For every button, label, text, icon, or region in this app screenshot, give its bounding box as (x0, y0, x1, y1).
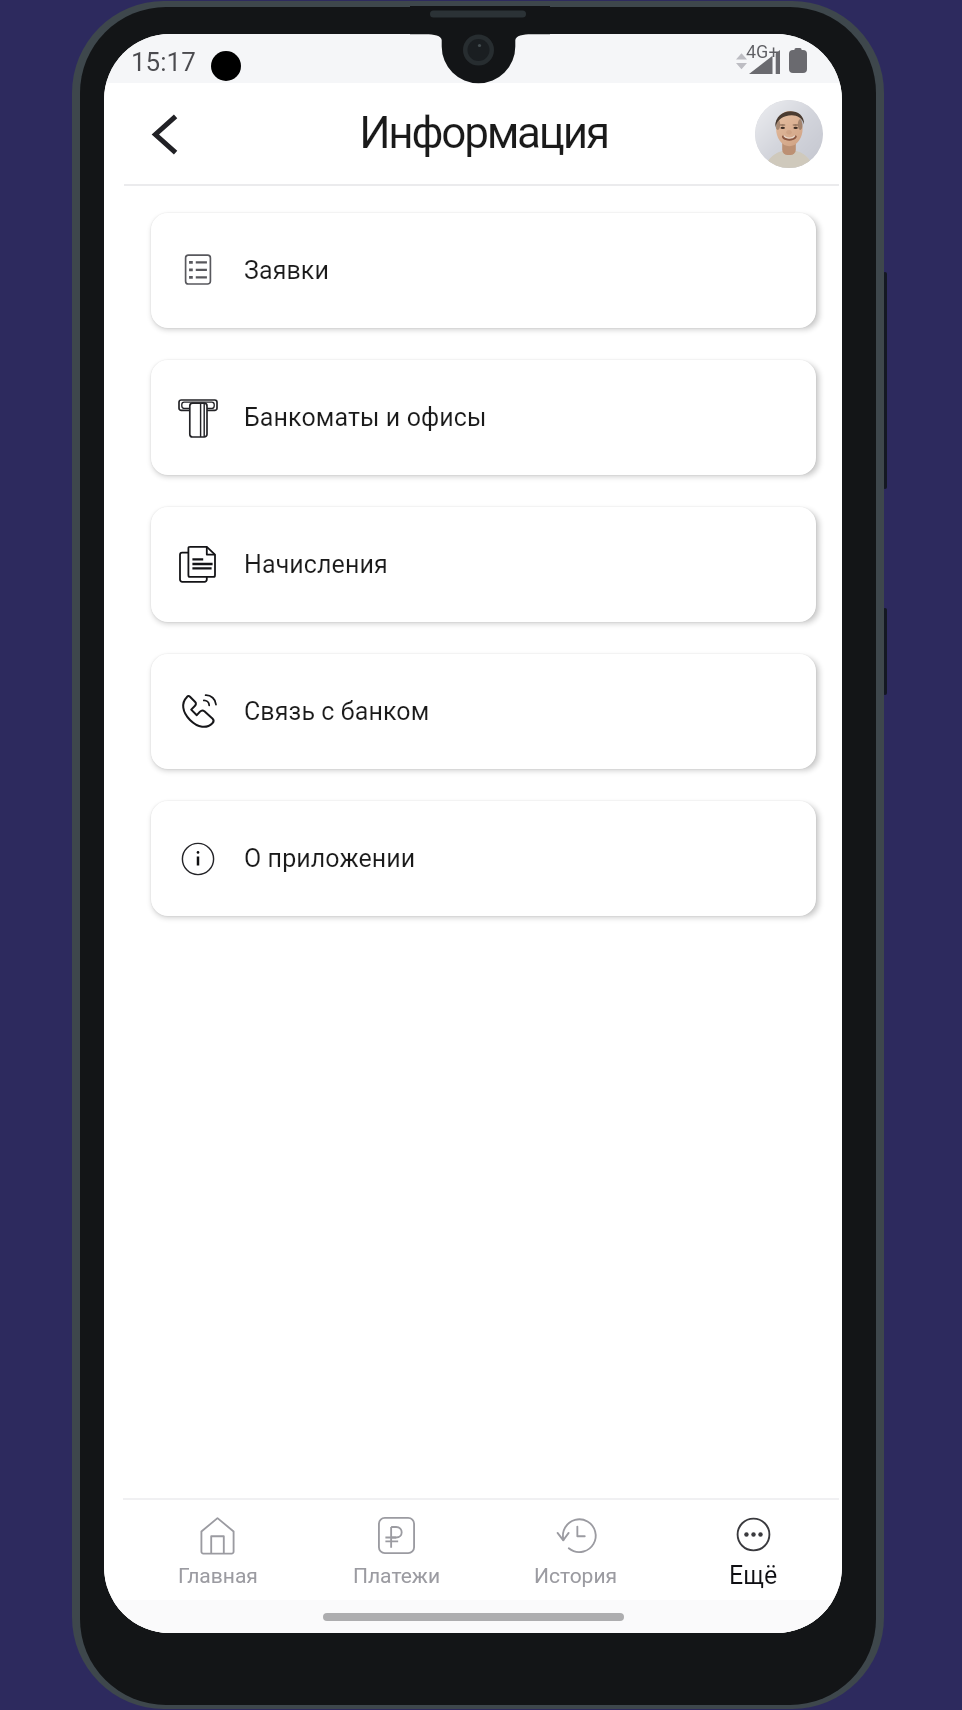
button[interactable]: История (486, 1500, 665, 1600)
button[interactable]: Профиль (755, 100, 823, 168)
staticText: Заявки (244, 256, 329, 285)
button[interactable]: О приложении (151, 801, 816, 916)
staticText: Платежи (353, 1564, 441, 1589)
staticText: Связь с банком (244, 697, 430, 726)
staticText: 4G+ (746, 41, 779, 62)
staticText: О приложении (244, 844, 416, 873)
button[interactable]: Связь с банком (151, 654, 816, 769)
staticText: Главная (178, 1564, 258, 1589)
staticText: Начисления (244, 550, 388, 579)
button[interactable]: Банкоматы и офисы (151, 360, 816, 475)
staticText: 15:17 (131, 47, 196, 77)
button[interactable]: Заявки (151, 213, 816, 328)
button[interactable]: Главная (128, 1500, 307, 1600)
button[interactable]: Назад (129, 98, 201, 170)
button[interactable]: Начисления (151, 507, 816, 622)
staticText: Банкоматы и офисы (244, 403, 487, 432)
button[interactable]: Ещё (665, 1500, 842, 1600)
button[interactable]: Платежи (307, 1500, 486, 1600)
staticText: Ещё (729, 1561, 778, 1590)
staticText: Информация (359, 107, 608, 159)
staticText: История (534, 1564, 618, 1589)
